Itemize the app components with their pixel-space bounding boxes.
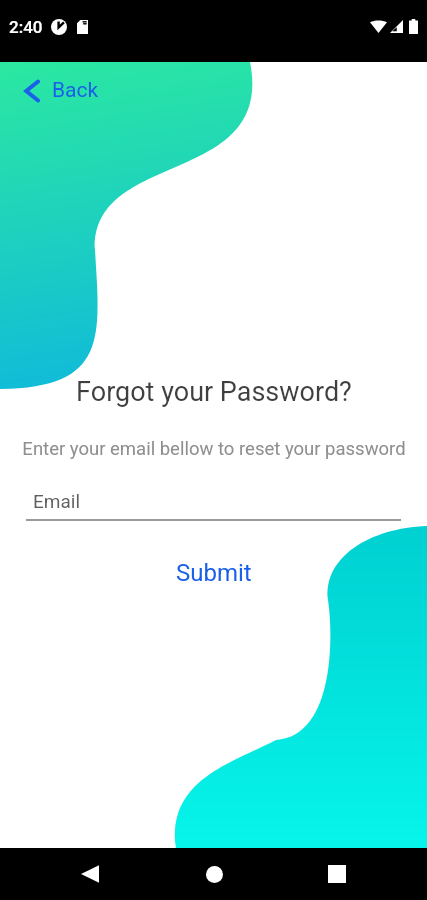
button[interactable]: Home xyxy=(182,848,246,900)
button[interactable]: Back xyxy=(20,74,103,107)
button[interactable]: Submit xyxy=(158,552,270,594)
staticText: Forgot your Password? xyxy=(76,376,352,408)
button[interactable]: Recent apps xyxy=(305,848,369,900)
staticText: Submit xyxy=(176,559,252,587)
staticText: Back xyxy=(52,78,99,103)
staticText: Email xyxy=(33,490,81,512)
staticText: Enter your email bellow to reset your pa… xyxy=(22,438,406,460)
button[interactable]: Back xyxy=(58,848,122,900)
staticText: 2:40 xyxy=(9,17,43,37)
button[interactable]: Email xyxy=(26,490,401,521)
